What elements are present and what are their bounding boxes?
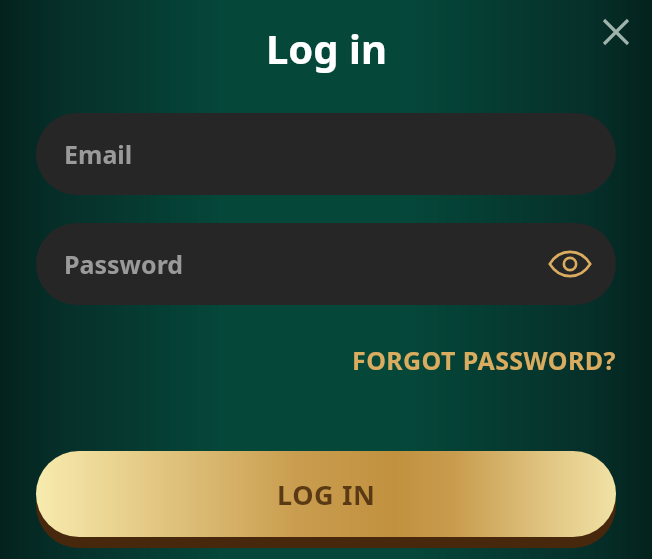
staticText: FORGOT PASSWORD? (352, 343, 616, 377)
staticText: LOG IN (277, 476, 376, 513)
button[interactable]: LOG IN (36, 451, 616, 537)
button[interactable]: Email (36, 113, 616, 195)
staticText: Email (64, 137, 133, 171)
button[interactable]: FORGOT PASSWORD? (348, 337, 620, 383)
staticText: Password (64, 247, 544, 281)
button[interactable]: Password (36, 223, 616, 305)
button[interactable]: Close (588, 4, 644, 60)
staticText: Log in (266, 21, 387, 75)
button[interactable]: Show password (544, 238, 596, 290)
